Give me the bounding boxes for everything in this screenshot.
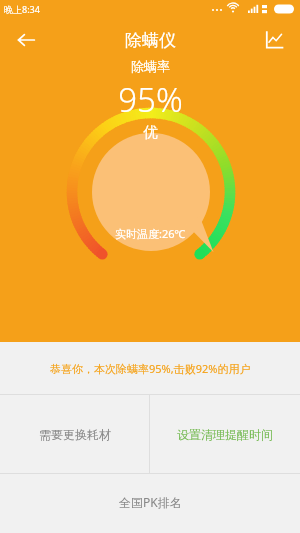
button[interactable]: 需要更换耗材: [0, 395, 149, 473]
staticText: 95%: [118, 77, 183, 122]
button[interactable]: 除螨率: [85, 58, 215, 142]
staticText: 实时温度:26℃: [115, 226, 186, 241]
staticText: 优: [143, 123, 158, 142]
button[interactable]: Statistics chart: [254, 20, 294, 60]
staticText: 全国PK排名: [119, 494, 182, 510]
staticText: 除螨仪: [125, 30, 176, 51]
button[interactable]: 全国PK排名: [0, 474, 300, 533]
button[interactable]: 设置清理提醒时间: [150, 395, 300, 473]
staticText: 需要更换耗材: [39, 427, 111, 442]
staticText: 恭喜你，本次除螨率95%,击败92%的用户: [50, 361, 251, 376]
button[interactable]: 恭喜你，本次除螨率95%,击败92%的用户: [0, 342, 300, 394]
staticText: 晚上8:34: [4, 3, 40, 15]
staticText: 设置清理提醒时间: [177, 427, 273, 442]
button[interactable]: Back: [6, 20, 46, 60]
staticText: 除螨率: [131, 58, 170, 74]
